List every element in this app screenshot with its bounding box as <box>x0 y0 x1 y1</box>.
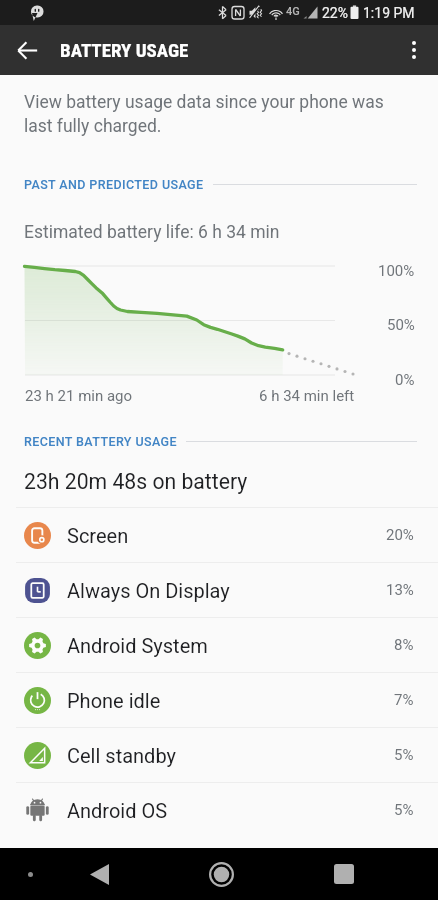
staticText: 5% <box>394 746 414 764</box>
staticText: BATTERY USAGE <box>60 39 189 61</box>
staticText: Android OS <box>67 799 168 822</box>
staticText: 22% <box>322 5 348 21</box>
button[interactable]: Home <box>190 848 252 900</box>
button[interactable]: Android OS <box>0 783 438 837</box>
staticText: 23 h 21 min ago <box>25 387 133 405</box>
staticText: 4G <box>286 5 300 18</box>
button[interactable]: More options <box>390 25 438 75</box>
staticText: 13% <box>386 581 414 599</box>
staticText: Always On Display <box>67 579 230 602</box>
staticText: 6 h 34 min left <box>259 387 355 405</box>
staticText: 50% <box>387 316 415 334</box>
staticText: 23h 20m 48s on battery <box>24 469 248 494</box>
staticText: PAST AND PREDICTED USAGE <box>24 177 204 192</box>
button[interactable]: Back <box>0 25 54 75</box>
staticText: View battery usage data since your phone… <box>24 92 384 136</box>
staticText: 20% <box>386 526 414 544</box>
button[interactable]: Android System <box>0 618 438 672</box>
staticText: 100% <box>378 262 415 280</box>
staticText: 8% <box>394 636 414 654</box>
button[interactable]: Hide keyboard <box>10 848 50 900</box>
button[interactable]: Back <box>69 848 129 900</box>
staticText: Android System <box>67 634 208 657</box>
staticText: Screen <box>67 524 129 547</box>
staticText: 1:19 PM <box>363 5 415 21</box>
staticText: 5% <box>394 801 414 819</box>
staticText: Phone idle <box>67 689 161 712</box>
button[interactable]: Screen <box>0 508 438 562</box>
button[interactable]: Always On Display <box>0 563 438 617</box>
staticText: 7% <box>394 691 414 709</box>
button[interactable]: Cell standby <box>0 728 438 782</box>
staticText: RECENT BATTERY USAGE <box>24 434 177 449</box>
staticText: Cell standby <box>67 744 176 767</box>
staticText: 0% <box>395 371 415 389</box>
staticText: Estimated battery life: 6 h 34 min <box>24 222 280 243</box>
button[interactable]: Recent apps <box>314 848 374 900</box>
button[interactable]: Phone idle <box>0 673 438 727</box>
